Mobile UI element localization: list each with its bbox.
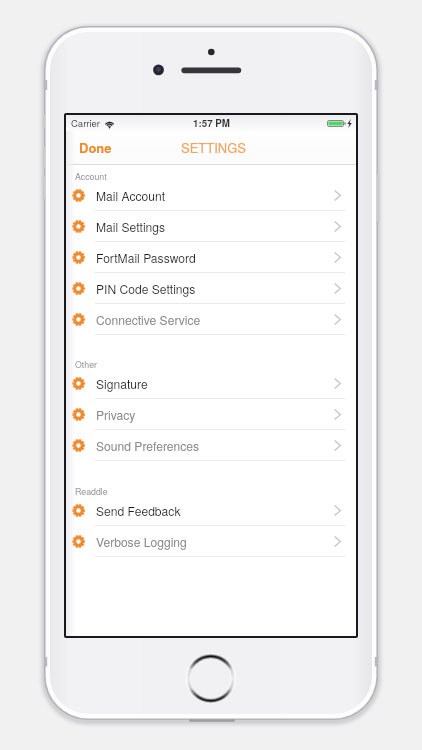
button[interactable]: Connective Service [66, 304, 356, 335]
staticText: Done [79, 138, 112, 157]
button[interactable]: Verbose Logging [66, 526, 356, 557]
staticText: Signature [96, 375, 148, 392]
staticText: PIN Code Settings [96, 280, 196, 297]
staticText: SETTINGS [181, 138, 247, 157]
button[interactable]: Done [66, 132, 123, 163]
button[interactable]: PIN Code Settings [66, 273, 356, 304]
button[interactable]: Signature [66, 368, 356, 399]
staticText: Privacy [96, 406, 136, 423]
staticText: 1:57 PM [193, 116, 231, 130]
staticText: Sound Preferences [96, 437, 200, 454]
staticText: Account [75, 170, 107, 183]
staticText: Verbose Logging [96, 533, 187, 550]
staticText: Mail Settings [96, 218, 166, 235]
button[interactable]: FortMail Password [66, 242, 356, 273]
staticText: Readdle [75, 485, 108, 498]
button[interactable]: Privacy [66, 399, 356, 430]
staticText: Carrier [71, 116, 101, 130]
staticText: Send Feedback [96, 502, 181, 519]
staticText: Other [75, 358, 97, 371]
staticText: Mail Account [96, 187, 166, 204]
button[interactable]: Sound Preferences [66, 430, 356, 461]
button[interactable]: Send Feedback [66, 495, 356, 526]
button[interactable]: Mail Account [66, 180, 356, 211]
staticText: FortMail Password [96, 249, 196, 266]
staticText: Connective Service [96, 311, 201, 328]
button[interactable]: Mail Settings [66, 211, 356, 242]
